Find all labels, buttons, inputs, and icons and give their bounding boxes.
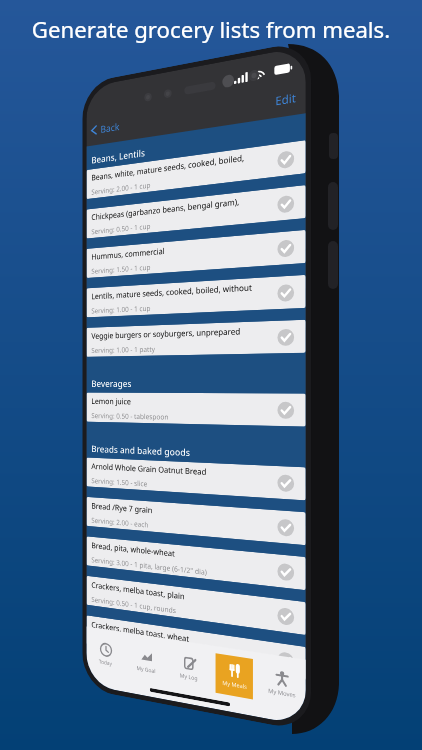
staticText: Serving: 0.50 - 1 cup [91,221,151,236]
staticText: Serving: 0.50 - tablespoon [91,410,169,422]
button[interactable]: Edit [275,89,296,108]
staticText: My Moves [268,686,296,700]
button[interactable]: Chickpeas (garbanzo beans, bengal gram), [86,185,306,238]
staticText: Serving: 3.00 - 1 pita, large (6-1/2" di… [91,555,207,577]
staticText: My Meals [222,679,247,691]
staticText: Serving: 2.00 - 1 cup [91,180,151,197]
button[interactable]: My Meals [211,652,257,706]
staticText: Crackers, melba toast, wheat [91,619,190,644]
staticText: Today [99,658,112,668]
staticText: My Log [180,671,198,683]
staticText: Bread /Rye 7 grain [91,500,152,515]
staticText: Lentils, mature seeds, cooked, boiled, w… [91,281,252,301]
staticText: Chickpeas (garbanzo beans, bengal gram), [91,195,240,222]
staticText: Generate grocery lists from meals. [0,14,422,44]
button[interactable]: Arnold Whole Grain Oatnut Bread [86,457,306,500]
button[interactable]: Today [86,633,125,682]
staticText: Crackers, melba toast, plain [91,579,185,601]
staticText: Breads and baked goods [91,442,191,459]
button[interactable]: My Moves [257,660,306,715]
staticText: Serving: 2.00 - each [91,515,149,529]
staticText: Arnold Whole Grain Oatnut Bread [91,460,207,477]
staticText: Bread, pita, whole-wheat [91,540,175,559]
button[interactable]: My Log [167,646,211,698]
button[interactable]: Back [90,119,120,138]
staticText: Back [100,119,120,136]
button[interactable]: Bread /Rye 7 grain [86,497,306,545]
button[interactable]: Lemon juice [86,393,306,427]
staticText: Serving: 1.00 - 1 cup [91,634,151,653]
button[interactable]: Veggie burgers or soyburgers, unprepared [86,320,306,357]
staticText: Serving: 0.50 - 1 cup, rounds [91,594,176,615]
button[interactable]: Beans, white, mature seeds, cooked, boil… [86,140,306,199]
staticText: Serving: 1.50 - 1 cup [91,262,151,276]
staticText: Edit [275,89,296,108]
button[interactable]: Crackers, melba toast, wheat [86,615,306,680]
staticText: Serving: 1.00 - 1 patty [91,344,155,355]
staticText: Serving: 1.50 - slice [91,475,148,488]
staticText: Serving: 1.00 - 1 cup [91,303,151,315]
staticText: Beverages [91,377,132,390]
button[interactable]: Crackers, melba toast, plain [86,576,306,635]
button[interactable]: My Goal [125,639,167,690]
staticText: Veggie burgers or soyburgers, unprepared [91,325,241,341]
staticText: Lemon juice [91,395,131,406]
button[interactable]: Lentils, mature seeds, cooked, boiled, w… [86,275,306,317]
staticText: Beans, Lentils [91,146,145,166]
staticText: Beans, white, mature seeds, cooked, boil… [91,151,245,182]
staticText: Hummus, commercial [91,245,165,262]
button[interactable]: Bread, pita, whole-wheat [86,536,306,590]
button[interactable]: Hummus, commercial [86,230,306,278]
staticText: My Goal [136,664,156,675]
